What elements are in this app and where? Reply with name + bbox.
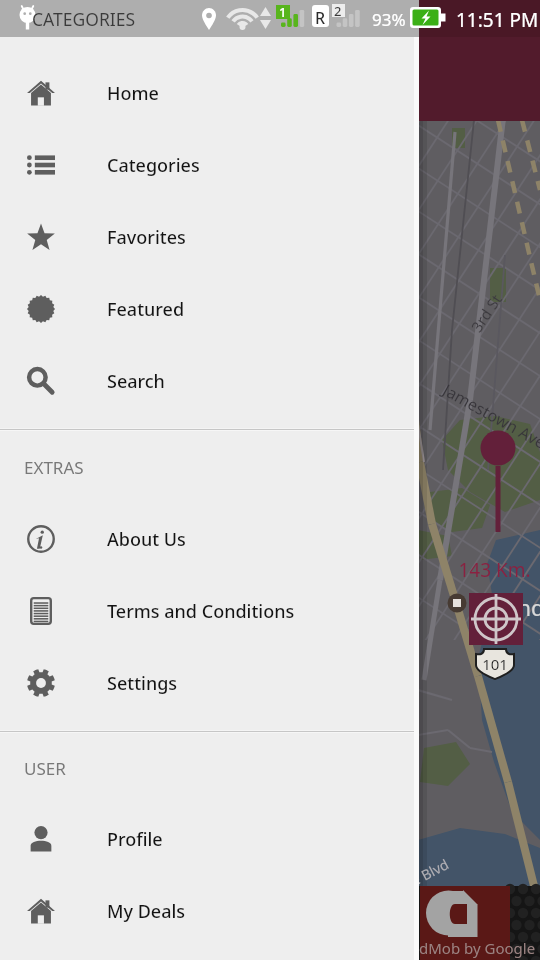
staticText: My Deals [107, 899, 186, 924]
button[interactable]: Favorites [0, 201, 419, 273]
staticText: dMob by Google [419, 938, 536, 958]
staticText: Profile [107, 827, 163, 852]
staticText: Jamestown Ave [439, 379, 540, 454]
button[interactable]: Settings [0, 647, 419, 719]
staticText: re Blvd [402, 854, 452, 893]
staticText: USER [24, 757, 66, 780]
staticText: About Us [107, 527, 186, 552]
button[interactable]: My Deals [0, 875, 419, 947]
staticText: Favorites [107, 225, 186, 250]
button[interactable]: About Us [0, 503, 419, 575]
staticText: 3rd St [466, 290, 506, 336]
staticText: Home [107, 81, 159, 106]
staticText: R [315, 7, 326, 29]
staticText: Settings [107, 671, 178, 696]
staticText: 1 [279, 3, 287, 21]
staticText: Featured [107, 297, 185, 322]
staticText: 93% [372, 8, 406, 31]
button[interactable]: Search [0, 345, 419, 417]
staticText: 101 [482, 654, 508, 674]
button[interactable]: Profile [0, 803, 419, 875]
button[interactable]: Featured [0, 273, 419, 345]
staticText: 11:51 PM [456, 7, 539, 33]
button[interactable]: Home [0, 57, 419, 129]
button[interactable]: Terms and Conditions [0, 575, 419, 647]
staticText: Search [107, 369, 165, 394]
staticText: nd [517, 592, 540, 622]
staticText: Categories [107, 153, 200, 178]
staticText: 143 Km. [458, 557, 531, 583]
staticText: CATEGORIES [32, 7, 136, 31]
staticText: EXTRAS [24, 456, 84, 479]
staticText: Terms and Conditions [107, 599, 295, 624]
button[interactable]: Categories [0, 129, 419, 201]
staticText: 2 [334, 2, 342, 20]
